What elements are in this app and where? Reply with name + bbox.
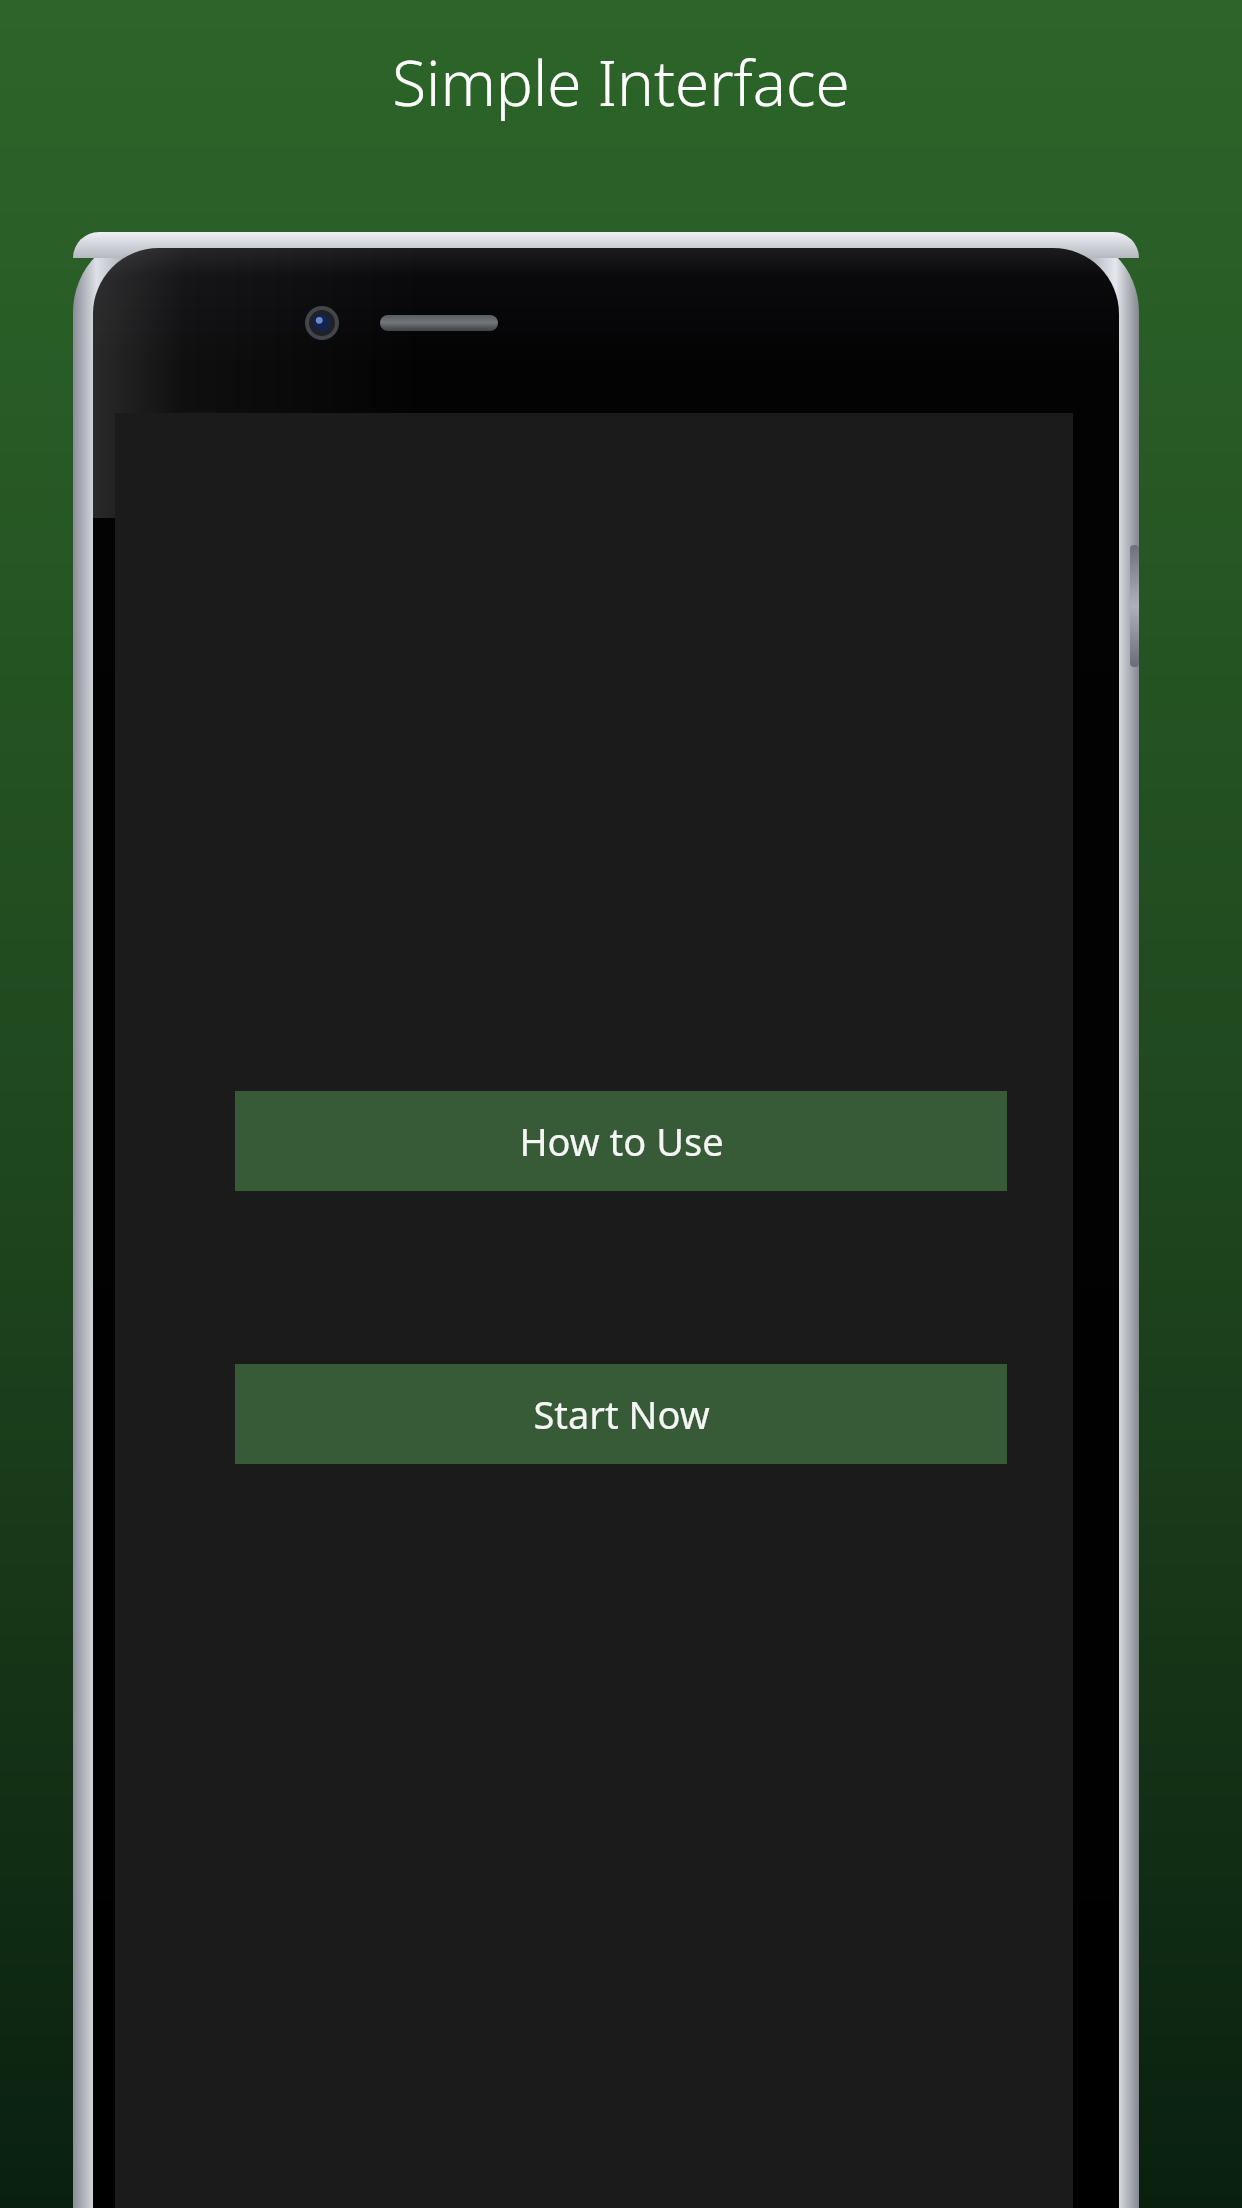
button[interactable]: Start Now xyxy=(235,1364,1007,1464)
staticText: How to Use xyxy=(519,1115,724,1167)
button[interactable]: How to Use xyxy=(235,1091,1007,1191)
other: Front camera xyxy=(305,306,339,340)
staticText: Start Now xyxy=(533,1388,710,1440)
staticText: Simple Interface xyxy=(392,40,850,124)
